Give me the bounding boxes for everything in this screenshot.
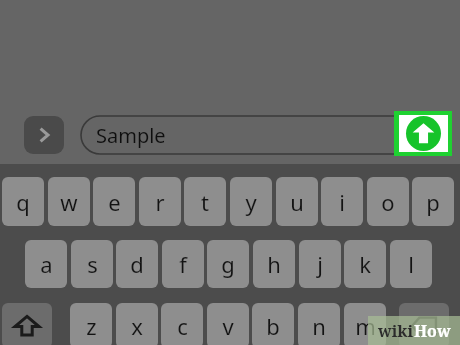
- button[interactable]: n: [298, 303, 340, 345]
- button[interactable]: i: [321, 177, 363, 226]
- button[interactable]: a: [25, 240, 67, 288]
- button[interactable]: p: [412, 177, 454, 226]
- staticText: a: [40, 249, 53, 279]
- staticText: y: [245, 187, 257, 217]
- button[interactable]: k: [344, 240, 386, 288]
- staticText: h: [267, 249, 281, 279]
- button[interactable]: y: [230, 177, 272, 226]
- button[interactable]: g: [207, 240, 249, 288]
- button[interactable]: Expand: [24, 116, 64, 154]
- button[interactable]: Shift: [2, 303, 52, 345]
- staticText: q: [16, 187, 30, 217]
- staticText: f: [179, 249, 187, 279]
- staticText: v: [222, 311, 234, 341]
- staticText: s: [87, 249, 98, 279]
- staticText: t: [201, 187, 209, 217]
- staticText: w: [60, 187, 78, 217]
- button[interactable]: o: [367, 177, 409, 226]
- button[interactable]: c: [161, 303, 203, 345]
- staticText: i: [339, 187, 345, 217]
- staticText: j: [317, 249, 323, 279]
- staticText: c: [177, 311, 188, 341]
- button[interactable]: d: [116, 240, 158, 288]
- button[interactable]: Backspace: [399, 303, 449, 345]
- button[interactable]: l: [390, 240, 432, 288]
- button[interactable]: Send: [394, 111, 452, 156]
- button[interactable]: b: [252, 303, 294, 345]
- button[interactable]: f: [162, 240, 204, 288]
- button[interactable]: [80, 115, 444, 155]
- button[interactable]: w: [48, 177, 90, 226]
- button[interactable]: x: [116, 303, 158, 345]
- staticText: z: [86, 311, 97, 341]
- staticText: n: [312, 311, 326, 341]
- button[interactable]: t: [184, 177, 226, 226]
- staticText: wiki: [378, 320, 414, 342]
- button[interactable]: s: [71, 240, 113, 288]
- staticText: o: [381, 187, 395, 217]
- staticText: r: [155, 187, 165, 217]
- button[interactable]: r: [139, 177, 181, 226]
- button[interactable]: u: [276, 177, 318, 226]
- button[interactable]: q: [2, 177, 44, 226]
- button[interactable]: h: [253, 240, 295, 288]
- staticText: d: [130, 249, 144, 279]
- staticText: p: [426, 187, 440, 217]
- button[interactable]: z: [70, 303, 112, 345]
- staticText: m: [355, 311, 376, 341]
- staticText: l: [408, 249, 414, 279]
- staticText: e: [108, 187, 121, 217]
- staticText: Sample: [96, 122, 166, 149]
- staticText: k: [359, 249, 371, 279]
- staticText: g: [221, 249, 235, 279]
- button[interactable]: m: [344, 303, 386, 345]
- staticText: u: [290, 187, 304, 217]
- button[interactable]: j: [299, 240, 341, 288]
- button[interactable]: e: [93, 177, 135, 226]
- staticText: x: [131, 311, 143, 341]
- staticText: b: [266, 311, 280, 341]
- button[interactable]: v: [207, 303, 249, 345]
- staticText: How: [414, 320, 451, 342]
